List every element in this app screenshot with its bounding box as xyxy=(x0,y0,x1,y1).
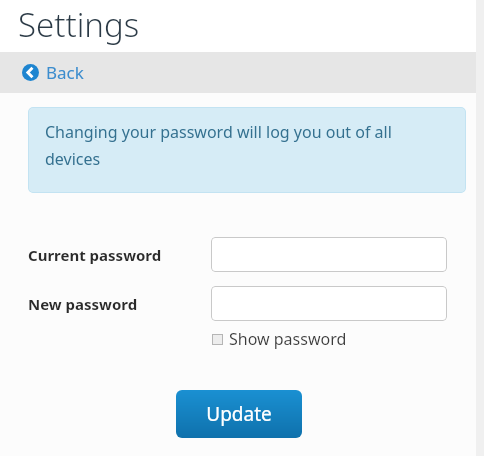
other: Back xyxy=(22,64,39,81)
staticText: Show password xyxy=(229,328,347,350)
button[interactable]: Update xyxy=(176,390,302,438)
button[interactable]: Show password xyxy=(211,326,348,352)
staticText: Update xyxy=(206,401,272,427)
button[interactable]: Back xyxy=(20,57,86,88)
staticText: Settings xyxy=(18,2,140,47)
staticText: New password xyxy=(28,294,211,314)
staticText: Back xyxy=(46,61,84,84)
staticText: Changing your password will log you out … xyxy=(45,121,449,170)
button[interactable]: Password input xyxy=(211,286,447,321)
staticText: Current password xyxy=(28,245,211,265)
button[interactable]: Password input xyxy=(211,237,447,272)
